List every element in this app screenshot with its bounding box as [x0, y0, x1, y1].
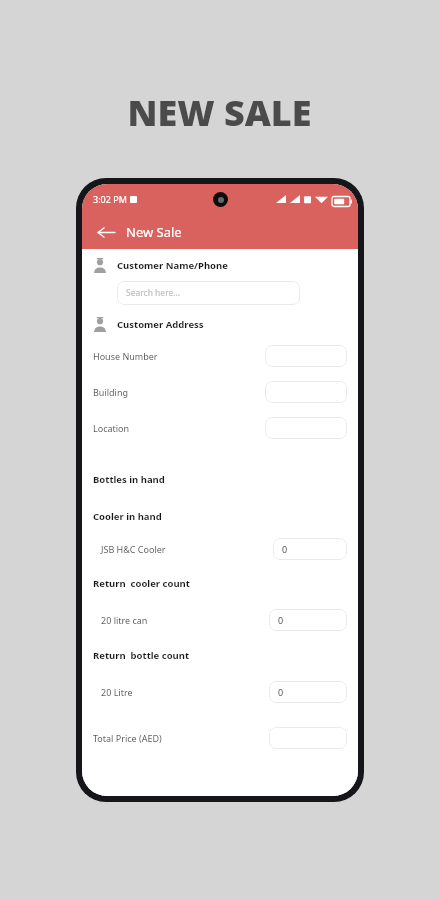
staticText: 0 [282, 543, 288, 555]
button[interactable]: 20 Litre [93, 681, 347, 703]
button[interactable]: 0 [269, 681, 347, 703]
staticText: JSB H&C Cooler [101, 543, 166, 555]
staticText: Search here... [126, 287, 181, 299]
button[interactable]: House Number [93, 345, 347, 367]
staticText: 20 Litre [101, 686, 133, 698]
button[interactable]: Search customer [117, 281, 300, 305]
staticText: Building [93, 386, 129, 398]
staticText: 0 [278, 686, 284, 698]
button[interactable] [269, 727, 347, 749]
staticText: Return cooler count [93, 577, 190, 590]
button[interactable]: 0 [269, 609, 347, 631]
button[interactable]: Location [93, 417, 347, 439]
button[interactable]: 0 [273, 538, 347, 560]
button[interactable]: 20 litre can [93, 609, 347, 631]
staticText: Return bottle count [93, 649, 190, 662]
button[interactable] [265, 417, 347, 439]
staticText: 20 litre can [101, 614, 148, 626]
staticText: New Sale [126, 223, 182, 241]
staticText: 3:02 PM [93, 193, 127, 205]
staticText: 0 [278, 614, 284, 626]
button[interactable]: Building [93, 381, 347, 403]
staticText: Customer Address [117, 318, 204, 331]
button[interactable]: Customer Name/Phone [93, 258, 347, 273]
button[interactable] [265, 381, 347, 403]
staticText: Bottles in hand [93, 473, 165, 486]
staticText: Cooler in hand [93, 510, 162, 523]
staticText: Location [93, 422, 130, 434]
staticText: Total Price (AED) [93, 732, 162, 744]
button[interactable] [265, 345, 347, 367]
staticText: Customer Name/Phone [117, 259, 228, 272]
button[interactable]: Customer Address [93, 317, 347, 332]
staticText: House Number [93, 350, 158, 362]
button[interactable]: Total Price (AED) [93, 727, 347, 749]
button[interactable]: JSB H&C Cooler [93, 538, 347, 560]
button[interactable]: Back [94, 220, 118, 244]
staticText: NEW SALE [0, 88, 439, 137]
